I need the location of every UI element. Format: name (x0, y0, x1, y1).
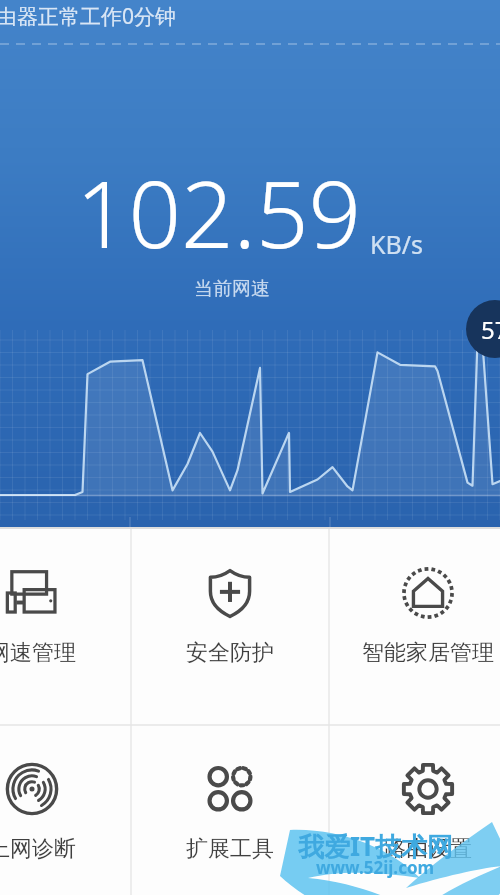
button[interactable]: Extension tools (131, 725, 329, 895)
staticText: 57 (481, 313, 500, 346)
other: Extension tools (202, 761, 258, 817)
other: Security protection (202, 565, 258, 621)
staticText: 网速管理 (0, 639, 76, 667)
staticText: KB/s (370, 227, 424, 261)
staticText: www.52ij.com (316, 856, 435, 879)
staticText: 上网诊断 (0, 835, 76, 863)
staticText: 安全防护 (186, 639, 274, 667)
other: Network diagnosis (4, 761, 60, 817)
staticText: 当前网速 (194, 277, 270, 301)
button[interactable]: Speed management (0, 529, 131, 725)
other: Smart home management (400, 565, 456, 621)
staticText: 由器正常工作0分钟 (0, 2, 177, 31)
staticText: 我爱IT技术网 (298, 828, 454, 864)
button[interactable]: Security protection (131, 529, 329, 725)
button[interactable]: Smart home management (329, 529, 500, 725)
button[interactable]: Connected devices (466, 300, 500, 358)
other: Speed management (4, 565, 60, 621)
staticText: 扩展工具 (186, 835, 274, 863)
staticText: 路由设置 (384, 835, 472, 863)
button[interactable]: Network diagnosis (0, 725, 131, 895)
staticText: 102.59 (76, 150, 362, 275)
other: Router settings (400, 761, 456, 817)
button[interactable]: Router settings (329, 725, 500, 895)
staticText: 智能家居管理 (362, 639, 494, 667)
